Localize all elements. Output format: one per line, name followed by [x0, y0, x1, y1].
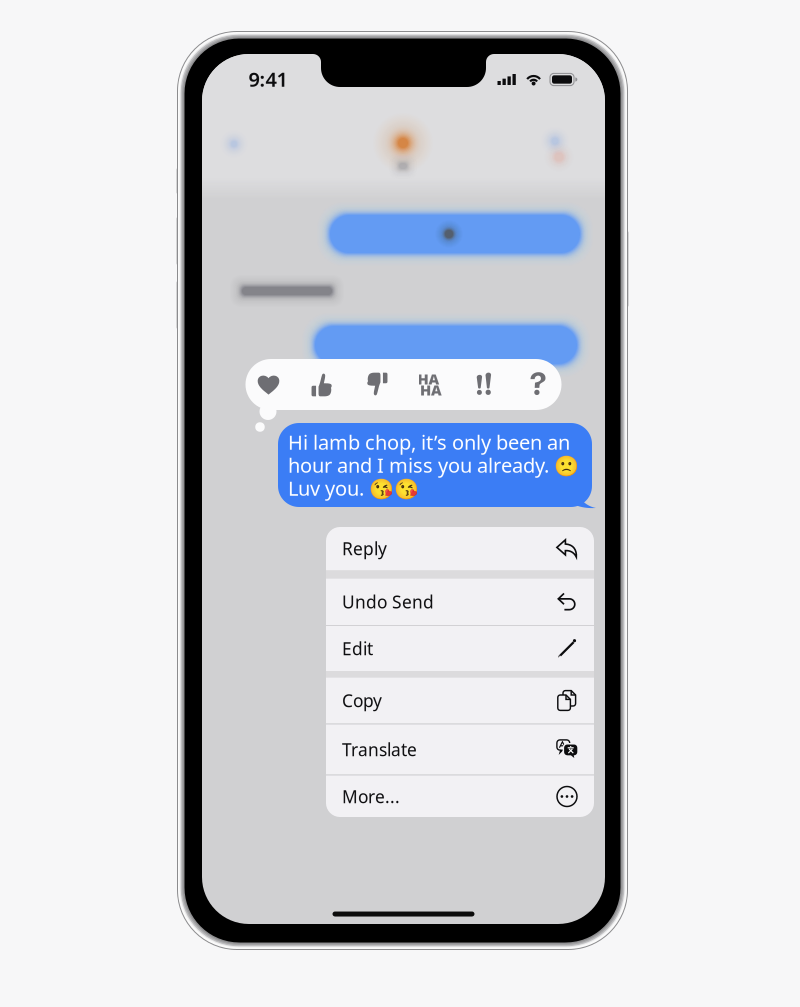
button[interactable]: Love — [241, 359, 295, 410]
button[interactable]: Undo Send — [326, 578, 594, 625]
staticText: HA — [420, 380, 442, 400]
button[interactable]: Edit — [326, 626, 594, 671]
button[interactable]: Haha — [403, 359, 457, 410]
staticText: Luv you. 😘😘 — [288, 475, 419, 501]
button[interactable]: More... — [326, 775, 594, 817]
button[interactable]: Copy — [326, 677, 594, 723]
staticText: hour and I miss you already. 🙁 — [288, 452, 579, 478]
staticText: Hi lamb chop, it’s only been an — [288, 429, 570, 455]
staticText: Reply — [342, 537, 387, 560]
button[interactable]: Translate — [326, 724, 594, 774]
staticText: Edit — [342, 637, 373, 660]
staticText: Copy — [342, 689, 382, 712]
staticText: HA — [417, 369, 439, 389]
button[interactable]: Thumbs up — [295, 359, 349, 410]
button[interactable]: Exclamation — [457, 359, 511, 410]
staticText: More... — [342, 785, 400, 808]
staticText: Translate — [342, 738, 417, 761]
button[interactable]: Reply — [326, 526, 594, 570]
staticText: Undo Send — [342, 590, 434, 613]
button[interactable]: Question mark — [511, 359, 565, 410]
button[interactable]: Thumbs down — [349, 359, 403, 410]
staticText: 9:41 — [248, 66, 287, 92]
